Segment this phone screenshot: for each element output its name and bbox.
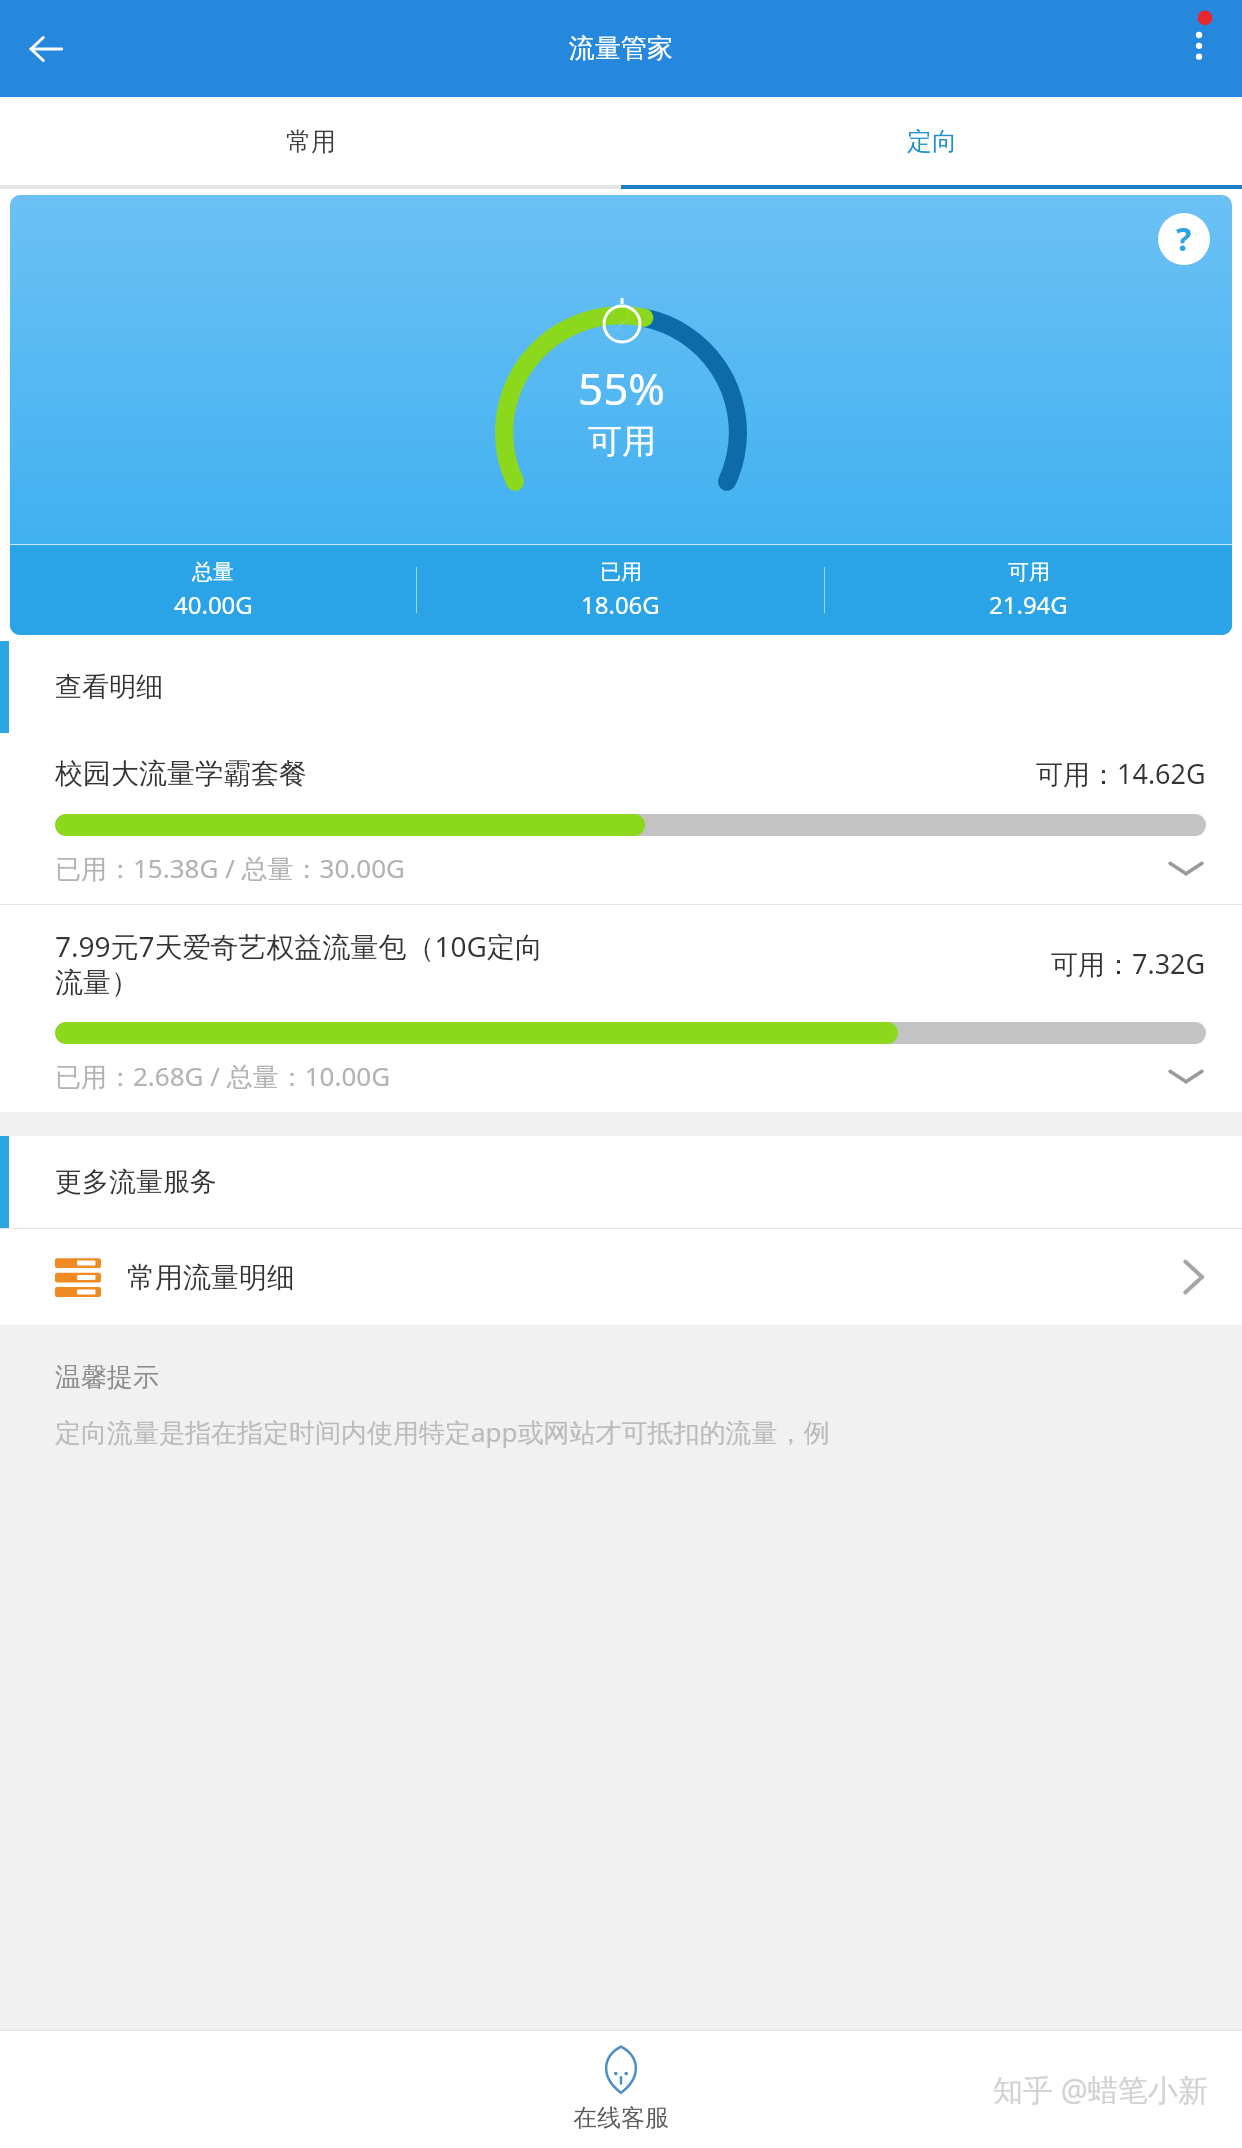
staticText: 查看明细 — [55, 670, 163, 704]
staticText: 流量管家 — [569, 32, 673, 65]
staticText: 可用：14.62G — [1036, 755, 1206, 792]
button[interactable]: 7.99元7天爱奇艺权益流量包（10G定向 — [0, 905, 1242, 1112]
staticText: 7.99元7天爱奇艺权益流量包（10G定向 — [55, 927, 543, 965]
staticText: 40.00G — [174, 588, 253, 621]
staticText: 可用 — [588, 420, 656, 463]
staticText: 18.06G — [581, 588, 660, 621]
button[interactable]: 更多流量服务 — [0, 1136, 1242, 1228]
staticText: 温馨提示 — [55, 1361, 159, 1394]
button[interactable]: 在线客服 — [543, 2039, 699, 2139]
staticText: 更多流量服务 — [55, 1165, 217, 1199]
staticText: 可用：7.32G — [1051, 945, 1206, 982]
staticText: 21.94G — [989, 588, 1068, 621]
button[interactable]: More options — [1164, 14, 1234, 84]
button[interactable]: Help — [1158, 213, 1210, 265]
button[interactable]: 常用 — [0, 97, 621, 185]
staticText: 校园大流量学霸套餐 — [55, 756, 307, 791]
button[interactable]: 查看明细 — [0, 641, 1242, 733]
button[interactable]: 定向 — [621, 97, 1242, 185]
staticText: 在线客服 — [573, 2103, 669, 2133]
button[interactable]: 校园大流量学霸套餐 — [0, 733, 1242, 904]
staticText: 定向流量是指在指定时间内使用特定app或网站才可抵扣的流量，例 — [55, 1414, 830, 1450]
staticText: 可用 — [1008, 559, 1050, 585]
staticText: 常用 — [286, 126, 336, 157]
staticText: 常用流量明细 — [127, 1260, 1180, 1295]
staticText: 流量） — [55, 965, 139, 1000]
staticText: 55% — [578, 358, 665, 418]
button[interactable]: 常用流量明细 — [0, 1229, 1242, 1325]
staticText: 已用：2.68G / 总量：10.00G — [55, 1058, 1166, 1094]
button[interactable]: Back — [10, 13, 82, 85]
staticText: 已用 — [600, 559, 642, 585]
staticText: ? — [1176, 217, 1192, 261]
staticText: 定向 — [907, 126, 957, 157]
staticText: 总量 — [192, 559, 234, 585]
staticText: 知乎 @蜡笔小新 — [993, 2069, 1208, 2110]
staticText: 已用：15.38G / 总量：30.00G — [55, 850, 1166, 886]
